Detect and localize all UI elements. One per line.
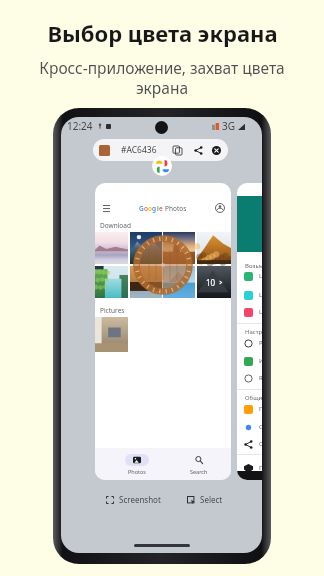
button[interactable]: 10	[197, 266, 231, 298]
button[interactable]: Copy	[170, 143, 184, 157]
button[interactable]: О	[237, 436, 262, 452]
button[interactable]: Account	[214, 202, 226, 214]
staticText: Цв	[259, 291, 262, 299]
button[interactable]: Из	[237, 353, 262, 369]
staticText: Pictures	[100, 306, 125, 315]
staticText: g	[152, 204, 157, 213]
staticText: G	[139, 204, 144, 213]
staticText: Кросс-приложение, захват цвета экрана	[34, 57, 290, 98]
button[interactable]: Цв	[237, 287, 262, 303]
button[interactable]: #AC6436	[121, 144, 157, 156]
staticText: Select	[200, 494, 223, 505]
staticText: o	[144, 204, 148, 213]
button[interactable]	[197, 232, 231, 264]
button[interactable]: Photos	[117, 452, 157, 477]
button[interactable]: Search	[179, 452, 219, 477]
staticText: 3G	[222, 119, 235, 133]
button[interactable]: Select	[184, 491, 226, 508]
staticText: Download	[100, 221, 131, 230]
button[interactable]: Цв	[237, 268, 262, 284]
staticText: Search	[190, 468, 208, 475]
button[interactable]: Screenshot	[103, 491, 164, 508]
staticText: Цв	[259, 272, 262, 280]
button[interactable]: Close	[209, 143, 223, 157]
staticText: Настройки	[245, 328, 262, 336]
staticText: Re	[259, 374, 262, 382]
button[interactable]: Menu	[95, 183, 231, 480]
staticText: П	[259, 405, 262, 413]
staticText: 10	[206, 277, 216, 288]
staticText: Screenshot	[119, 494, 161, 505]
staticText: Ре	[259, 339, 262, 347]
staticText: Выбор цвета экрана	[47, 18, 278, 48]
staticText: Возьмите	[245, 262, 262, 270]
button[interactable]: Menu	[100, 202, 112, 214]
button[interactable]: Re	[237, 370, 262, 386]
button[interactable]	[163, 266, 195, 298]
button[interactable]	[130, 266, 162, 298]
staticText: o	[148, 204, 152, 213]
staticText: Общий д	[245, 394, 262, 402]
button[interactable]: Color swatch	[99, 145, 110, 156]
button[interactable]: Возьмите	[237, 183, 262, 480]
staticText: Из	[259, 357, 262, 365]
staticText: Цв	[259, 308, 262, 316]
button[interactable]	[163, 232, 195, 264]
staticText: П	[259, 464, 262, 472]
staticText: Photos	[128, 468, 147, 475]
button[interactable]: О	[237, 419, 262, 435]
button[interactable]: П	[237, 401, 262, 417]
staticText: О	[259, 440, 262, 448]
staticText: l	[157, 204, 159, 213]
staticText: 12:24	[67, 119, 93, 133]
button[interactable]: Ре	[237, 335, 262, 351]
button[interactable]: Цв	[237, 304, 262, 320]
button[interactable]	[95, 266, 128, 298]
staticText: О	[259, 423, 262, 431]
staticText: e	[159, 204, 163, 213]
button[interactable]	[95, 317, 128, 352]
button[interactable]	[95, 232, 128, 264]
button[interactable]	[130, 232, 162, 264]
staticText: Photos	[165, 204, 187, 213]
button[interactable]: П	[237, 460, 262, 476]
button[interactable]: Share	[191, 143, 205, 157]
